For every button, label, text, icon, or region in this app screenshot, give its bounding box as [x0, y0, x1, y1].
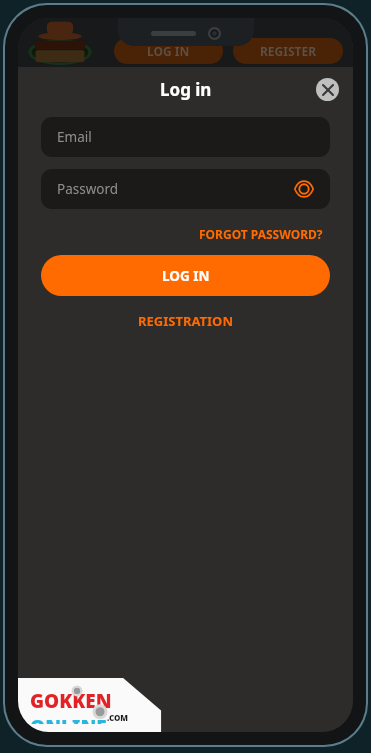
staticText: GOKKEN	[30, 688, 112, 714]
button[interactable]: FORGOT PASSWORD?	[195, 222, 327, 246]
staticText: Email	[57, 128, 92, 146]
staticText: LOG IN	[162, 267, 210, 285]
button[interactable]: LOG IN	[41, 255, 330, 296]
button[interactable]: REGISTRATION	[133, 307, 238, 335]
button[interactable]: Password	[41, 169, 330, 209]
staticText: ONLINE	[30, 714, 107, 724]
button[interactable]: LOG IN	[114, 38, 223, 64]
staticText: REGISTRATION	[138, 312, 233, 330]
staticText: FORGOT PASSWORD?	[199, 226, 323, 242]
button[interactable]: REGISTER	[233, 38, 343, 64]
staticText: Password	[57, 180, 290, 198]
staticText: LOG IN	[147, 43, 190, 59]
staticText: REGISTER	[260, 43, 317, 59]
button[interactable]: Close	[316, 78, 339, 101]
staticText: .COM	[107, 712, 129, 722]
staticText: Log in	[160, 78, 212, 101]
button[interactable]: Email	[41, 117, 330, 157]
button[interactable]: Show password	[290, 175, 318, 203]
